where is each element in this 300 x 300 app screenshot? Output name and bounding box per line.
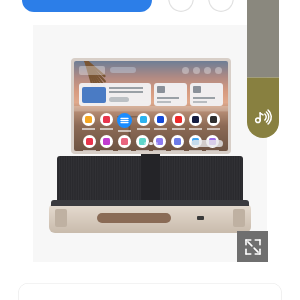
- button[interactable]: [22, 0, 152, 12]
- button[interactable]: TV control: [182, 67, 189, 74]
- button[interactable]: App 3: [137, 113, 150, 130]
- button[interactable]: App 5: [172, 113, 185, 130]
- button[interactable]: App 3: [136, 135, 149, 151]
- button[interactable]: [190, 83, 223, 106]
- button[interactable]: Sound mode: [247, 0, 279, 138]
- button[interactable]: More: [191, 140, 223, 147]
- button[interactable]: App 6: [189, 113, 202, 130]
- button[interactable]: [154, 83, 187, 106]
- button[interactable]: App 2: [117, 113, 132, 132]
- button[interactable]: TV control: [215, 67, 222, 74]
- button[interactable]: Expand to fullscreen: [237, 231, 268, 262]
- button[interactable]: [79, 83, 151, 106]
- button[interactable]: App 0: [82, 113, 95, 130]
- button[interactable]: App 1: [100, 113, 113, 130]
- button[interactable]: TV control: [204, 67, 211, 74]
- button[interactable]: TV control: [193, 67, 200, 74]
- button[interactable]: App 7: [206, 135, 219, 151]
- button[interactable]: App 5: [171, 135, 184, 151]
- button[interactable]: App 6: [189, 135, 202, 151]
- button[interactable]: App 4: [153, 135, 166, 151]
- button[interactable]: App 1: [100, 135, 113, 151]
- button[interactable]: App 2: [118, 135, 131, 151]
- button[interactable]: App 4: [154, 113, 167, 130]
- button[interactable]: App 0: [83, 135, 96, 151]
- button[interactable]: Option one: [168, 0, 194, 12]
- button[interactable]: Option two: [208, 0, 234, 12]
- button[interactable]: TV control: [33, 25, 267, 262]
- button[interactable]: App 7: [207, 113, 220, 130]
